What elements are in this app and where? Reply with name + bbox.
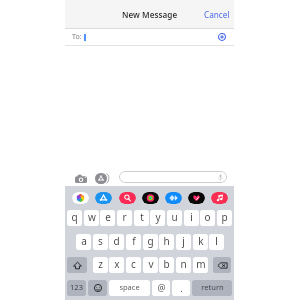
button[interactable]: 123 xyxy=(67,280,86,296)
staticText: g xyxy=(147,234,154,248)
button[interactable]: Apple Music xyxy=(211,192,228,204)
button[interactable]: v xyxy=(143,257,158,273)
button[interactable]: Emoji xyxy=(88,280,107,296)
button[interactable]: m xyxy=(193,257,208,273)
staticText: Cancel xyxy=(204,9,230,20)
button[interactable]: o xyxy=(200,210,215,226)
staticText: t xyxy=(140,210,144,224)
button[interactable]: . xyxy=(172,280,190,296)
button[interactable]: n xyxy=(176,257,191,273)
staticText: z xyxy=(98,257,103,271)
staticText: h xyxy=(163,234,170,248)
staticText: New Message xyxy=(122,9,178,20)
staticText: y xyxy=(155,210,161,224)
button[interactable]: b xyxy=(159,257,174,273)
button[interactable]: c xyxy=(126,257,141,273)
staticText: w xyxy=(88,210,96,224)
staticText: v xyxy=(148,257,154,271)
staticText: . xyxy=(180,282,183,294)
button[interactable]: l xyxy=(209,234,224,250)
button[interactable]: @ xyxy=(152,280,170,296)
staticText: @ xyxy=(157,281,166,293)
staticText: n xyxy=(180,257,187,271)
button[interactable]: x xyxy=(109,257,124,273)
button[interactable]: iMessage text field xyxy=(119,171,227,183)
button[interactable]: App Store xyxy=(95,173,110,184)
button[interactable]: Digital Touch xyxy=(188,192,205,204)
button[interactable]: Apple Pay xyxy=(165,192,182,204)
button[interactable]: k xyxy=(193,234,208,250)
staticText: 123 xyxy=(70,282,83,292)
staticText: j xyxy=(182,234,185,248)
staticText: d xyxy=(113,234,120,248)
staticText: r xyxy=(122,210,127,224)
staticText: a xyxy=(81,234,87,248)
staticText: To: xyxy=(72,32,82,42)
button[interactable]: r xyxy=(117,210,132,226)
button[interactable]: Shift xyxy=(67,257,87,273)
staticText: f xyxy=(132,234,136,248)
button[interactable]: q xyxy=(67,210,82,226)
staticText: b xyxy=(163,257,170,271)
button[interactable]: i xyxy=(184,210,199,226)
staticText: q xyxy=(71,210,78,224)
button[interactable]: s xyxy=(93,234,108,250)
button[interactable]: h xyxy=(159,234,174,250)
button[interactable]: j xyxy=(176,234,191,250)
staticText: e xyxy=(105,210,111,224)
button[interactable]: Camera xyxy=(75,173,87,184)
button[interactable]: t xyxy=(134,210,149,226)
button[interactable]: u xyxy=(167,210,182,226)
button[interactable]: e xyxy=(100,210,115,226)
staticText: m xyxy=(196,257,206,271)
staticText: o xyxy=(204,210,211,224)
staticText: x xyxy=(114,257,120,271)
staticText: u xyxy=(171,210,178,224)
button[interactable]: space xyxy=(109,280,150,296)
button[interactable]: y xyxy=(150,210,165,226)
button[interactable]: Music video xyxy=(142,192,159,204)
staticText: i xyxy=(190,210,193,224)
button[interactable]: d xyxy=(109,234,124,250)
staticText: s xyxy=(98,234,103,248)
button[interactable]: z xyxy=(93,257,108,273)
button[interactable]: Backspace xyxy=(213,257,231,273)
button[interactable]: Cancel xyxy=(198,5,234,24)
staticText: p xyxy=(221,210,228,224)
staticText: l xyxy=(215,234,218,248)
button[interactable]: Photos xyxy=(72,192,89,204)
button[interactable]: p xyxy=(217,210,232,226)
staticText: return xyxy=(201,282,224,292)
button[interactable]: w xyxy=(84,210,99,226)
button[interactable]: f xyxy=(126,234,141,250)
staticText: k xyxy=(198,234,204,248)
button[interactable]: Image search xyxy=(119,192,136,204)
button[interactable]: a xyxy=(76,234,91,250)
button[interactable]: App Store xyxy=(95,192,112,204)
button[interactable]: Add contact xyxy=(218,33,226,41)
button[interactable]: return xyxy=(192,280,232,296)
staticText: space xyxy=(119,282,140,292)
button[interactable]: g xyxy=(143,234,158,250)
staticText: c xyxy=(131,257,136,271)
